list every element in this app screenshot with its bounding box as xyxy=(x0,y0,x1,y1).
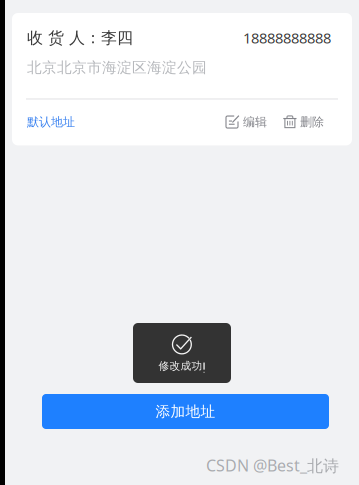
button[interactable]: 默认地址 xyxy=(27,115,75,129)
staticText: 北京北京市海淀区海淀公园 xyxy=(27,59,207,77)
button[interactable]: 编辑 xyxy=(225,115,267,129)
staticText: 修改成功 xyxy=(158,359,202,372)
staticText: 编辑 xyxy=(243,115,267,129)
staticText: CSDN @Best_北诗 xyxy=(206,455,339,476)
staticText: 默认地址 xyxy=(27,115,75,129)
staticText: 删除 xyxy=(300,115,324,129)
staticText: 添加地址 xyxy=(155,402,215,420)
staticText: 18888888888 xyxy=(243,28,331,48)
staticText: 收 货 人：李四 xyxy=(27,28,133,48)
button[interactable]: 删除 xyxy=(283,115,324,129)
button[interactable]: 添加地址 xyxy=(42,394,329,429)
